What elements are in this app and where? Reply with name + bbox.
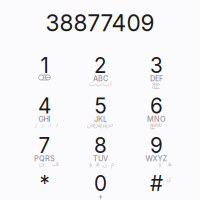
staticText: DEF xyxy=(150,74,163,83)
staticText: ف ق xyxy=(36,157,56,171)
button[interactable]: 0 xyxy=(72,171,128,200)
staticText: س ش ص ض xyxy=(86,117,112,132)
staticText: ج ح خ xyxy=(151,77,160,91)
staticText: # xyxy=(150,171,163,196)
staticText: 2 xyxy=(94,53,107,78)
staticText: GHI xyxy=(38,115,50,123)
button[interactable]: 9 xyxy=(128,133,184,173)
staticText: WXYZ xyxy=(145,154,167,163)
staticText: 6 xyxy=(150,93,163,118)
staticText: 9 xyxy=(150,133,163,158)
button[interactable]: # xyxy=(128,171,184,200)
staticText: PQRS xyxy=(34,154,55,163)
button[interactable]: 5 xyxy=(72,94,128,134)
staticText: 8 xyxy=(94,133,107,158)
staticText: ه و ي xyxy=(146,157,169,171)
staticText: 5 xyxy=(94,93,106,118)
staticText: TUV xyxy=(93,154,108,163)
staticText: 3 xyxy=(150,53,163,78)
staticText: ا ب ت ث xyxy=(88,77,111,91)
button[interactable]: 2 xyxy=(72,53,128,93)
staticText: د ذ ر ز xyxy=(33,117,57,132)
button[interactable]: 8 xyxy=(72,133,128,173)
staticText: 7 xyxy=(38,133,50,158)
button[interactable]: 3 xyxy=(128,53,184,93)
staticText: ABC xyxy=(93,74,108,83)
staticText: * xyxy=(39,171,49,196)
staticText: 38877409 xyxy=(45,9,154,37)
button[interactable]: 6 xyxy=(128,94,184,134)
staticText: 0 xyxy=(94,171,107,196)
staticText: + xyxy=(98,192,103,200)
staticText: 4 xyxy=(38,93,51,118)
button[interactable]: 7 xyxy=(16,133,72,173)
button[interactable]: 4 xyxy=(16,94,72,134)
staticText: JKL xyxy=(94,115,107,123)
staticText: 1 xyxy=(40,53,48,78)
staticText: MNO xyxy=(147,115,166,123)
button[interactable]: * xyxy=(16,171,72,200)
staticText: م ن ه و xyxy=(88,157,113,171)
staticText: ط ظ ع غ xyxy=(149,117,162,132)
button[interactable]: 1 xyxy=(16,53,72,93)
